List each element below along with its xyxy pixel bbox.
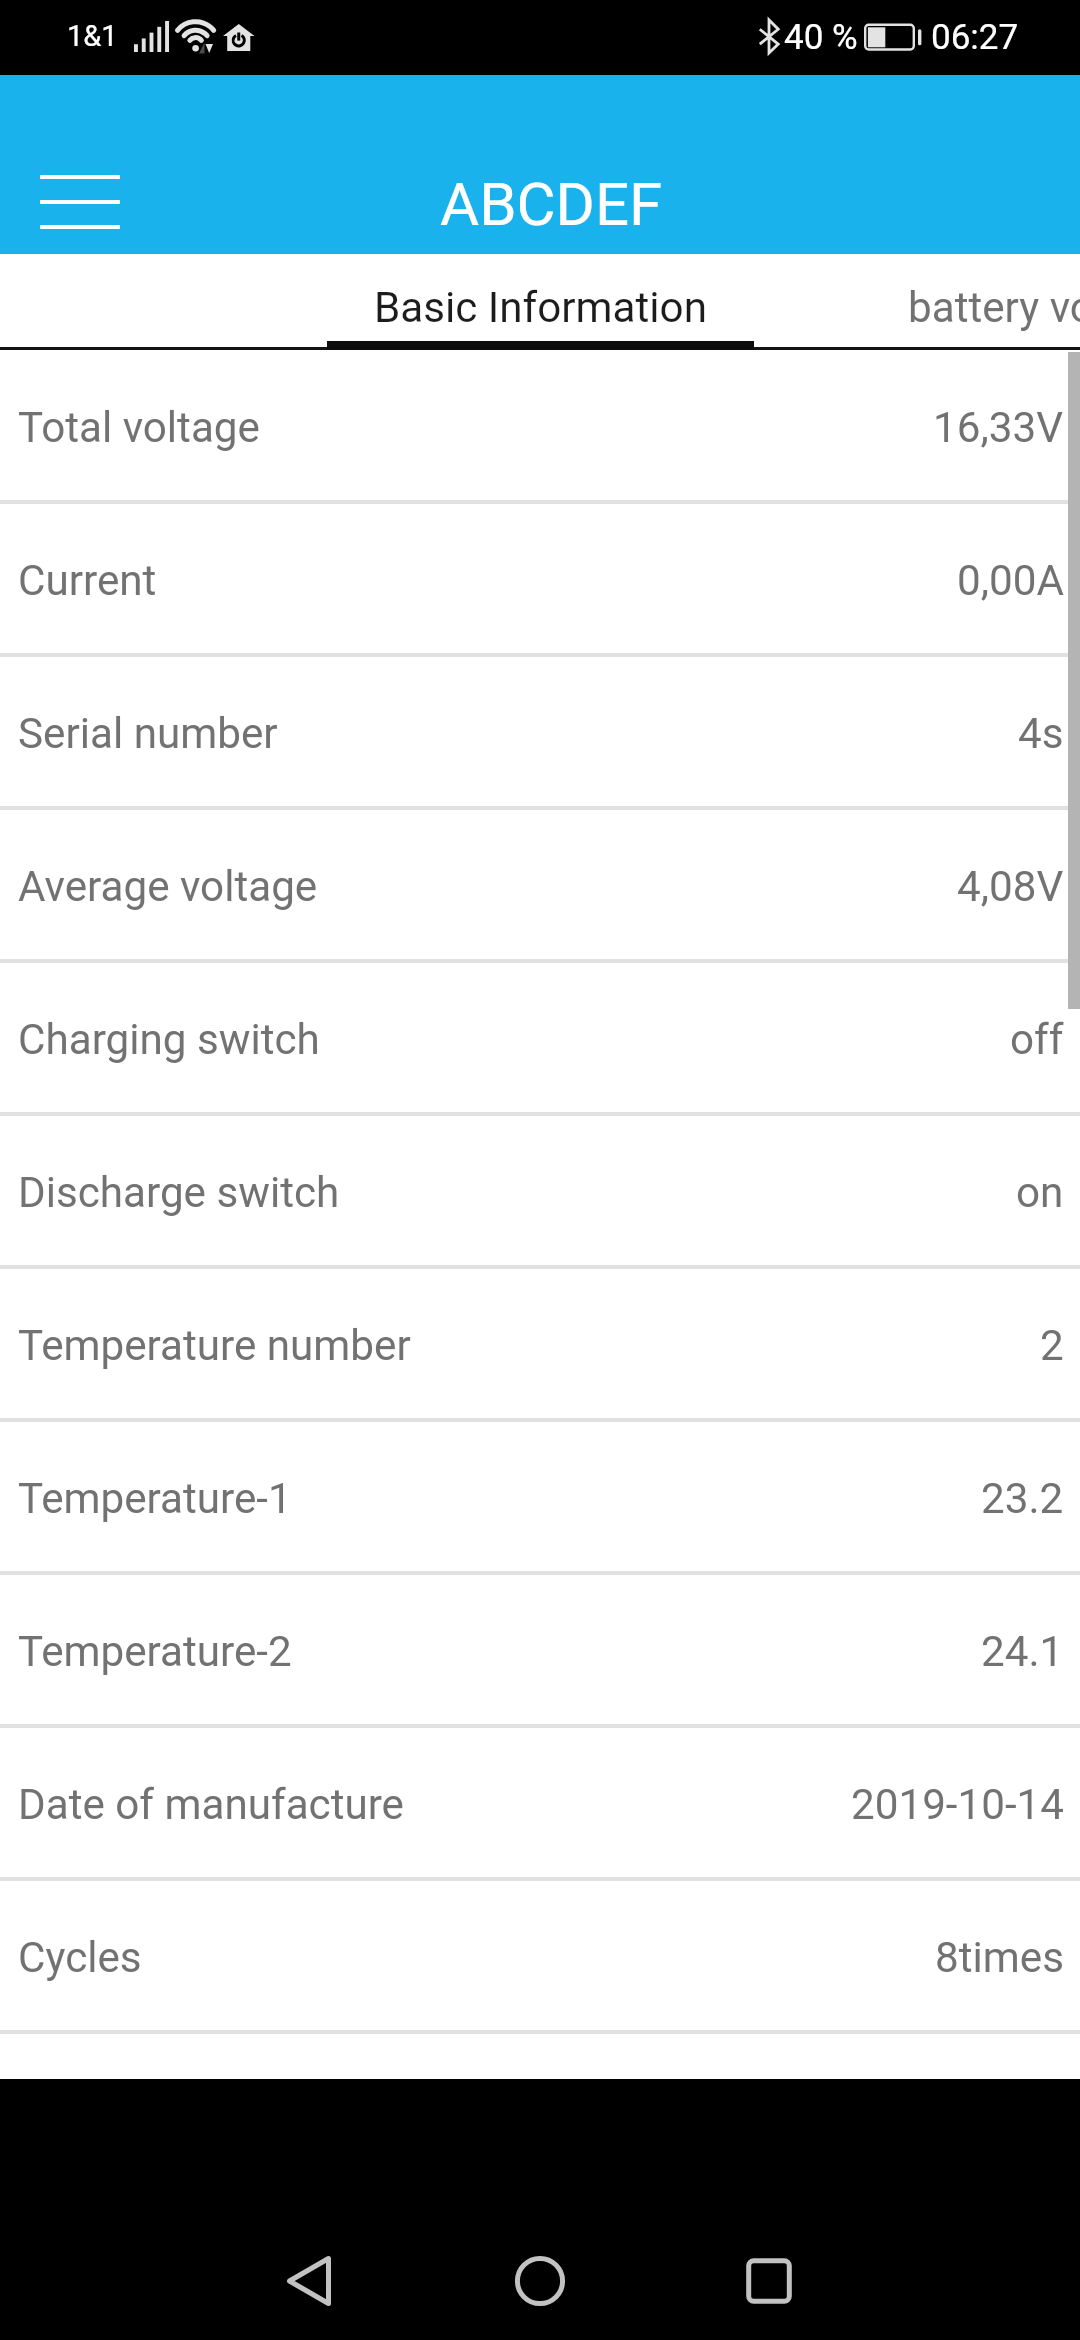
- staticText: ABCDEF: [440, 169, 663, 239]
- staticText: 2: [1040, 1321, 1064, 1370]
- button[interactable]: Cycles: [0, 1881, 1080, 2030]
- staticText: on: [1016, 1168, 1064, 1217]
- staticText: Current: [18, 556, 157, 605]
- staticText: Serial number: [18, 709, 278, 758]
- staticText: 0,00A: [957, 556, 1064, 605]
- staticText: 16,33V: [933, 403, 1064, 452]
- button[interactable]: Serial number: [0, 657, 1080, 806]
- staticText: 24.1: [981, 1627, 1064, 1676]
- staticText: 2019-10-14: [851, 1780, 1064, 1829]
- button[interactable]: Open navigation menu: [38, 171, 122, 233]
- staticText: 4,08V: [957, 862, 1064, 911]
- staticText: battery voltage: [908, 283, 1080, 332]
- button[interactable]: Home: [496, 2237, 584, 2325]
- button[interactable]: Date of manufacture: [0, 1728, 1080, 1877]
- button[interactable]: Recent apps: [725, 2237, 813, 2325]
- button[interactable]: battery voltage: [754, 259, 1080, 355]
- staticText: off: [1010, 1015, 1064, 1064]
- staticText: Cycles: [18, 1933, 142, 1982]
- button[interactable]: Temperature-1: [0, 1422, 1080, 1571]
- staticText: Temperature-2: [18, 1627, 292, 1676]
- staticText: 4s: [1018, 709, 1064, 758]
- staticText: Temperature-1: [18, 1474, 292, 1523]
- staticText: Total voltage: [18, 403, 260, 452]
- staticText: 23.2: [981, 1474, 1064, 1523]
- button[interactable]: Average voltage: [0, 810, 1080, 959]
- staticText: Date of manufacture: [18, 1780, 404, 1829]
- staticText: Discharge switch: [18, 1168, 340, 1217]
- staticText: 06:27: [931, 17, 1019, 58]
- staticText: 40 %: [784, 17, 858, 58]
- button[interactable]: Current: [0, 504, 1080, 653]
- staticText: Temperature number: [18, 1321, 411, 1370]
- button[interactable]: Temperature-2: [0, 1575, 1080, 1724]
- button[interactable]: Back: [265, 2237, 353, 2325]
- button[interactable]: Charging switch: [0, 963, 1080, 1112]
- button[interactable]: Basic Information: [327, 259, 754, 355]
- staticText: 8times: [935, 1933, 1064, 1982]
- staticText: 1&1: [67, 19, 118, 53]
- staticText: Charging switch: [18, 1015, 320, 1064]
- staticText: Basic Information: [374, 283, 707, 332]
- button[interactable]: Temperature number: [0, 1269, 1080, 1418]
- button[interactable]: Total voltage: [0, 351, 1080, 500]
- button[interactable]: Discharge switch: [0, 1116, 1080, 1265]
- staticText: Average voltage: [18, 862, 318, 911]
